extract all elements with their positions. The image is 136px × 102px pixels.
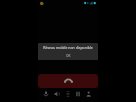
button[interactable]: OK [66, 54, 71, 58]
staticText: OK [66, 54, 71, 58]
button[interactable]: Keypad [63, 89, 73, 99]
button[interactable]: Speaker [52, 89, 62, 99]
staticText: Réseau mobile non disponible [43, 45, 93, 50]
button[interactable]: Add call [84, 89, 94, 99]
button[interactable]: End call [38, 74, 98, 88]
button[interactable]: Hold [73, 89, 83, 99]
button[interactable]: Mute [41, 89, 51, 99]
